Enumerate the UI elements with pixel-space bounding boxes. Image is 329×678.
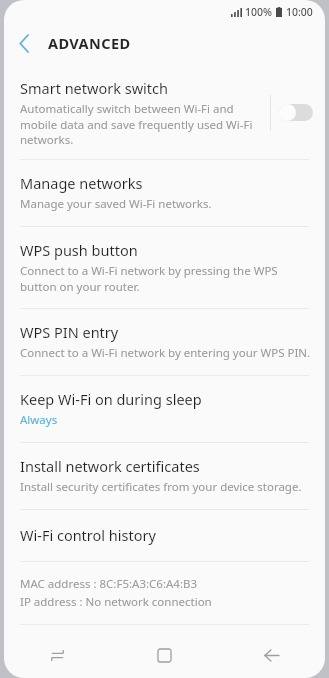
button[interactable]: Manage networks: [4, 160, 325, 226]
staticText: 100%: [245, 5, 272, 19]
staticText: Connect to a Wi-Fi network by entering y…: [20, 345, 311, 361]
staticText: MAC address : 8C:F5:A3:C6:A4:B3: [20, 576, 198, 592]
staticText: Manage networks: [20, 173, 143, 193]
button[interactable]: WPS push button: [4, 227, 325, 308]
staticText: Install network certificates: [20, 456, 200, 476]
button[interactable]: Home: [111, 632, 218, 678]
button[interactable]: Install network certificates: [4, 443, 325, 509]
staticText: Wi-Fi control history: [20, 525, 156, 545]
button[interactable]: Smart network switch toggle: [271, 96, 321, 129]
staticText: WPS push button: [20, 240, 138, 260]
button[interactable]: Wi-Fi control history: [4, 510, 325, 561]
staticText: Connect to a Wi-Fi network by pressing t…: [20, 263, 313, 294]
button[interactable]: Back: [218, 632, 325, 678]
button[interactable]: Keep Wi-Fi on during sleep: [4, 376, 325, 442]
button[interactable]: Recents: [4, 632, 111, 678]
button[interactable]: WPS PIN entry: [4, 309, 325, 375]
button[interactable]: Back: [4, 24, 44, 62]
staticText: Smart network switch: [20, 78, 168, 98]
staticText: WPS PIN entry: [20, 322, 119, 342]
staticText: Automatically switch between Wi-Fi and m…: [20, 101, 260, 147]
staticText: Install security certificates from your …: [20, 479, 302, 495]
staticText: Manage your saved Wi-Fi networks.: [20, 196, 212, 212]
button[interactable]: Smart network switch: [4, 68, 325, 159]
staticText: ADVANCED: [48, 33, 131, 53]
staticText: IP address : No network connection: [20, 594, 212, 610]
staticText: Keep Wi-Fi on during sleep: [20, 389, 202, 409]
staticText: Always: [20, 412, 58, 428]
staticText: 10:00: [286, 5, 313, 19]
